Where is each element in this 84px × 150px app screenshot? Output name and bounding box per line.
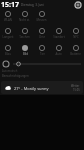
button[interactable]: Langzeit: [0, 28, 16, 40]
staticText: NFC: [73, 35, 79, 39]
staticText: Taschen: [19, 35, 30, 39]
staticText: Automatisch: [2, 69, 18, 73]
button[interactable]: Batterie: [67, 45, 84, 57]
staticText: Dienstag, 3. Juni: [21, 3, 44, 7]
button[interactable]: 27° - Mostly sunny: [1, 81, 83, 94]
button[interactable]: Auto brightness: [2, 60, 10, 68]
button[interactable]: Bild: [16, 45, 33, 57]
button[interactable]: Ton: [33, 45, 50, 57]
staticText: Standort: [53, 35, 65, 39]
staticText: Langzeit: [2, 35, 14, 39]
button[interactable]: Messen: [33, 11, 50, 23]
button[interactable]: Nicht st.: [16, 11, 33, 23]
staticText: Batterie: [70, 52, 81, 56]
staticText: Ton: [40, 52, 45, 56]
button[interactable]: Taschen: [16, 28, 33, 40]
staticText: Wetter: [71, 84, 80, 88]
staticText: Benachrichtigungen: [2, 74, 29, 78]
staticText: Orte: [39, 35, 45, 39]
staticText: 15:05: [73, 88, 80, 92]
staticText: 15:17: [1, 0, 19, 9]
button[interactable]: Auto: [50, 45, 67, 57]
button[interactable]: WLAN: [0, 11, 16, 23]
staticText: Bild: [23, 52, 28, 56]
button[interactable]: Settings: [74, 1, 82, 9]
staticText: Nicht st.: [19, 18, 30, 22]
staticText: WLAN: [4, 18, 12, 22]
staticText: Messen: [36, 18, 47, 22]
staticText: Blau: [5, 52, 11, 56]
button[interactable]: NFC: [67, 28, 84, 40]
staticText: Auto: [55, 52, 62, 56]
button[interactable]: [13, 60, 81, 68]
button[interactable]: Orte: [33, 28, 50, 40]
button[interactable]: Blau: [0, 45, 16, 57]
staticText: 27° - Mostly sunny: [14, 86, 49, 91]
button[interactable]: Standort: [50, 28, 67, 40]
